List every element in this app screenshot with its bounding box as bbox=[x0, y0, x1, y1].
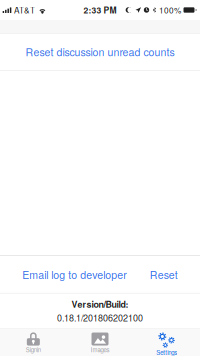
button[interactable]: Reset bbox=[150, 267, 178, 282]
button[interactable]: Signin bbox=[0, 328, 67, 356]
staticText: Images bbox=[90, 346, 109, 354]
button[interactable]: Email log to developer bbox=[22, 267, 127, 282]
staticText: 2:33 PM bbox=[83, 4, 116, 16]
staticText: 0.18.1/201806202100 bbox=[57, 311, 143, 324]
button[interactable]: Settings bbox=[133, 328, 200, 356]
staticText: Settings bbox=[156, 348, 177, 356]
staticText: Reset bbox=[150, 267, 178, 282]
staticText: AT&T bbox=[14, 4, 35, 16]
button[interactable]: Images bbox=[67, 328, 133, 356]
button[interactable]: Reset discussion unread counts bbox=[0, 33, 200, 70]
staticText: 100% bbox=[159, 4, 181, 16]
staticText: Reset discussion unread counts bbox=[25, 45, 174, 59]
staticText: Signin bbox=[26, 346, 41, 354]
staticText: Email log to developer bbox=[22, 267, 127, 282]
staticText: Version/Build: bbox=[71, 298, 128, 310]
